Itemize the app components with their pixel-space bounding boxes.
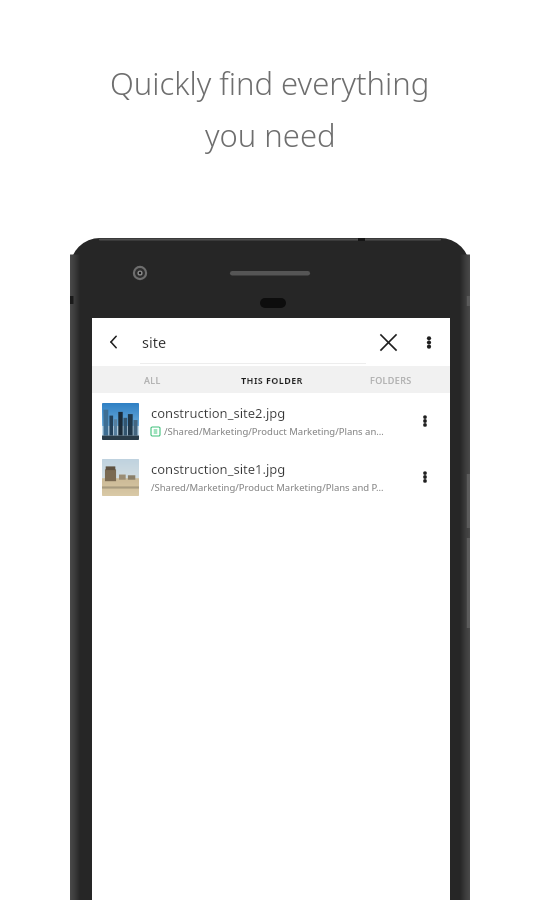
button[interactable]: File options xyxy=(410,462,440,492)
staticText: construction_site2.jpg xyxy=(151,404,286,422)
button[interactable]: construction_site2.jpg xyxy=(92,393,450,449)
button[interactable]: More options xyxy=(410,323,448,361)
button[interactable]: FOLDERS xyxy=(331,366,450,393)
button[interactable]: Back xyxy=(92,320,136,364)
button[interactable]: Clear search xyxy=(366,320,410,364)
staticText: /Shared/Marketing/Product Marketing/Plan… xyxy=(164,425,384,438)
button[interactable]: THIS FOLDER xyxy=(212,366,331,393)
button[interactable]: File options xyxy=(410,406,440,436)
staticText: site xyxy=(142,332,167,352)
staticText: construction_site1.jpg xyxy=(151,460,286,478)
staticText: you need xyxy=(205,114,336,156)
button[interactable]: site xyxy=(136,318,366,366)
staticText: ALL xyxy=(144,374,161,386)
button[interactable]: construction_site1.jpg xyxy=(92,449,450,505)
staticText: /Shared/Marketing/Product Marketing/Plan… xyxy=(151,481,384,494)
staticText: THIS FOLDER xyxy=(241,374,303,386)
staticText: FOLDERS xyxy=(370,374,412,386)
staticText: Quickly find everything xyxy=(110,62,430,104)
button[interactable]: ALL xyxy=(92,366,212,393)
